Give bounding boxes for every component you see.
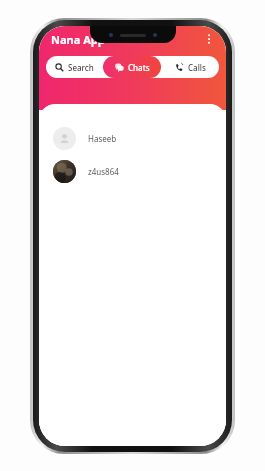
button[interactable]: Chats — [103, 56, 161, 78]
button[interactable]: Calls — [161, 56, 219, 78]
staticText: Search — [68, 62, 94, 73]
staticText: Calls — [188, 62, 206, 73]
button[interactable]: z4us864 — [39, 155, 226, 188]
button[interactable]: Search — [46, 56, 103, 78]
staticText: Haseeb — [88, 133, 117, 144]
button[interactable]: More options — [200, 30, 218, 48]
staticText: Chats — [128, 62, 150, 73]
button[interactable]: Haseeb — [39, 122, 226, 155]
staticText: z4us864 — [88, 166, 119, 177]
staticText: Nana App — [51, 32, 105, 47]
